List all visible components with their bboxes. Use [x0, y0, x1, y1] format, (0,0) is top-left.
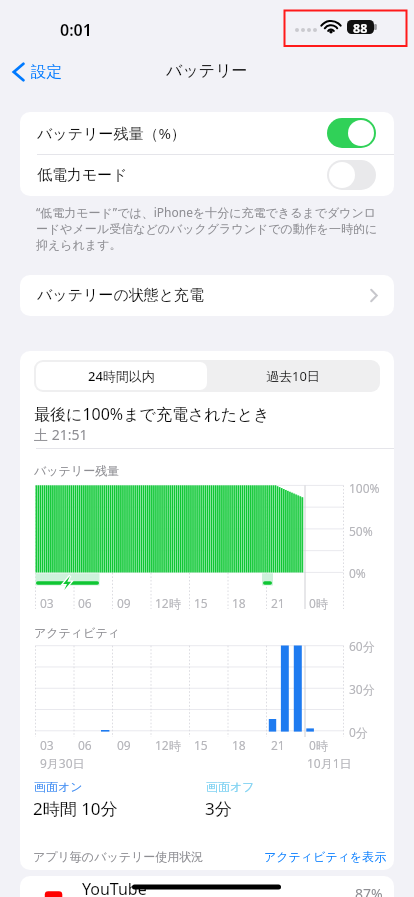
staticText: 2時間 10分 — [33, 797, 118, 820]
staticText: バッテリー残量（%） — [37, 123, 186, 143]
staticText: バッテリー残量 — [34, 463, 120, 478]
staticText: 0分 — [349, 724, 368, 740]
staticText: 09 — [117, 595, 131, 611]
staticText: “低電力モード”では、iPhoneを十分に充電できるまでダウンロードやメール受信… — [36, 204, 381, 252]
staticText: 12時 — [155, 595, 181, 611]
staticText: 18 — [232, 595, 246, 611]
button[interactable]: 24時間以内 — [36, 362, 207, 390]
staticText: 50% — [349, 523, 373, 539]
staticText: 18 — [232, 737, 246, 753]
button[interactable]: Back to 設定 — [8, 59, 68, 85]
staticText: アクティビティ — [34, 625, 120, 640]
staticText: 12時 — [155, 737, 181, 753]
button[interactable]: 過去10日 — [207, 362, 378, 390]
staticText: 03 — [40, 737, 54, 753]
staticText: バッテリーの状態と充電 — [37, 286, 205, 305]
button[interactable]: アクティビティを表示 — [264, 849, 387, 864]
staticText: 0:01 — [60, 19, 92, 41]
staticText: 低電力モード — [37, 166, 128, 185]
staticText: 3分 — [205, 797, 232, 820]
staticText: 21 — [271, 737, 285, 753]
staticText: 24時間以内 — [88, 367, 155, 385]
staticText: 土 21:51 — [34, 425, 88, 444]
staticText: 09 — [117, 737, 131, 753]
staticText: 画面オン — [34, 779, 83, 794]
staticText: 過去10日 — [266, 367, 320, 385]
staticText: 画面オフ — [206, 779, 255, 794]
staticText: 設定 — [31, 62, 62, 82]
staticText: アプリ毎のバッテリー使用状況 — [33, 849, 204, 864]
staticText: 0% — [349, 565, 366, 581]
staticText: 87% — [355, 884, 383, 897]
staticText: 0時 — [309, 595, 328, 611]
staticText: 30分 — [349, 681, 375, 697]
staticText: 03 — [40, 595, 54, 611]
staticText: 最後に100%まで充電されたとき — [34, 403, 270, 425]
staticText: 88 — [353, 20, 368, 34]
staticText: 10月1日 — [307, 755, 352, 771]
button[interactable]: バッテリー残量（%） — [20, 112, 394, 154]
staticText: 60分 — [349, 638, 375, 654]
button[interactable]: YouTube 87% — [20, 877, 394, 897]
staticText: 0時 — [309, 737, 328, 753]
button[interactable]: 低電力モード — [20, 154, 394, 196]
button[interactable]: バッテリーの状態と充電 — [20, 275, 394, 316]
staticText: 21 — [271, 595, 285, 611]
button[interactable]: On — [327, 118, 376, 148]
staticText: 15 — [194, 595, 208, 611]
staticText: 06 — [78, 737, 92, 753]
staticText: 9月30日 — [40, 755, 85, 771]
button[interactable]: Off — [327, 160, 376, 190]
staticText: YouTube — [82, 878, 147, 897]
staticText: 15 — [194, 737, 208, 753]
staticText: 06 — [78, 595, 92, 611]
staticText: バッテリー — [166, 61, 248, 81]
staticText: 100% — [349, 480, 380, 496]
